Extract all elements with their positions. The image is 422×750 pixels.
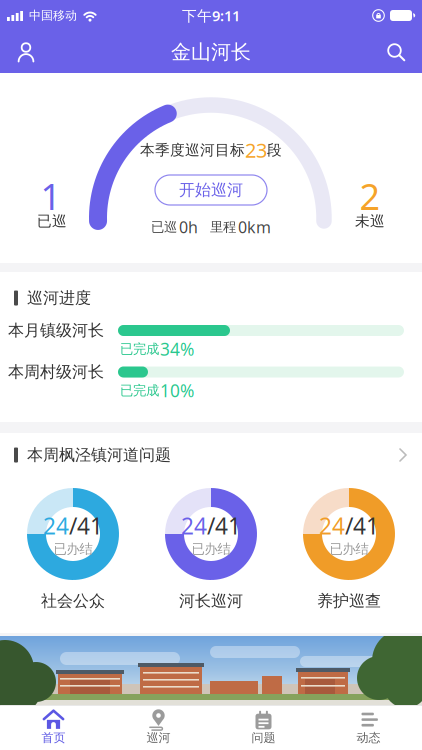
staticText: /41 [69,511,103,541]
staticText: /41 [345,511,379,541]
staticText: 首页 [41,730,65,745]
staticText: 0km [238,216,271,238]
staticText: 巡河 [146,730,170,745]
staticText: 已完成 [120,382,159,399]
staticText: 中国移动 [29,8,77,23]
staticText: 已办结 [53,541,92,557]
button[interactable]: 本周枫泾镇河道问题 [0,445,422,465]
staticText: 未巡 [355,212,385,230]
staticText: /41 [207,511,241,541]
staticText: 段 [267,141,282,159]
staticText: 1 [40,172,61,220]
staticText: 社会公众 [41,591,105,611]
staticText: 24 [319,511,345,541]
staticText: 养护巡查 [317,591,381,611]
staticText: 问题 [251,730,275,745]
staticText: 24 [181,511,207,541]
button[interactable]: 问题 [211,706,316,750]
staticText: 动态 [356,730,380,745]
staticText: 已完成 [120,341,159,357]
staticText: 0h [179,216,198,238]
staticText: 已巡 [151,219,177,235]
staticText: 本周枫泾镇河道问题 [27,445,171,465]
staticText: 金山河长 [171,40,251,64]
staticText: 已巡 [37,212,67,230]
button[interactable]: 巡河 [106,706,211,750]
button[interactable]: Search [384,40,422,64]
staticText: 河长巡河 [179,591,243,611]
staticText: 24 [43,511,69,541]
button[interactable]: Profile [0,40,38,64]
staticText: 10% [160,379,194,402]
button[interactable]: 首页 [1,706,106,750]
staticText: 已办结 [191,541,230,557]
staticText: 巡河进度 [27,288,91,308]
staticText: 本月镇级河长 [8,321,104,340]
button[interactable]: 开始巡河 [155,175,267,205]
button[interactable]: 动态 [316,706,421,750]
staticText: 本周村级河长 [8,362,104,382]
staticText: 里程 [210,219,236,235]
staticText: 已办结 [329,541,368,557]
staticText: 本季度巡河目标 [140,141,245,159]
staticText: 2 [359,172,380,220]
staticText: 下午9:11 [182,6,240,25]
staticText: 开始巡河 [179,180,243,200]
staticText: 23 [245,137,267,163]
staticText: 34% [160,337,194,360]
